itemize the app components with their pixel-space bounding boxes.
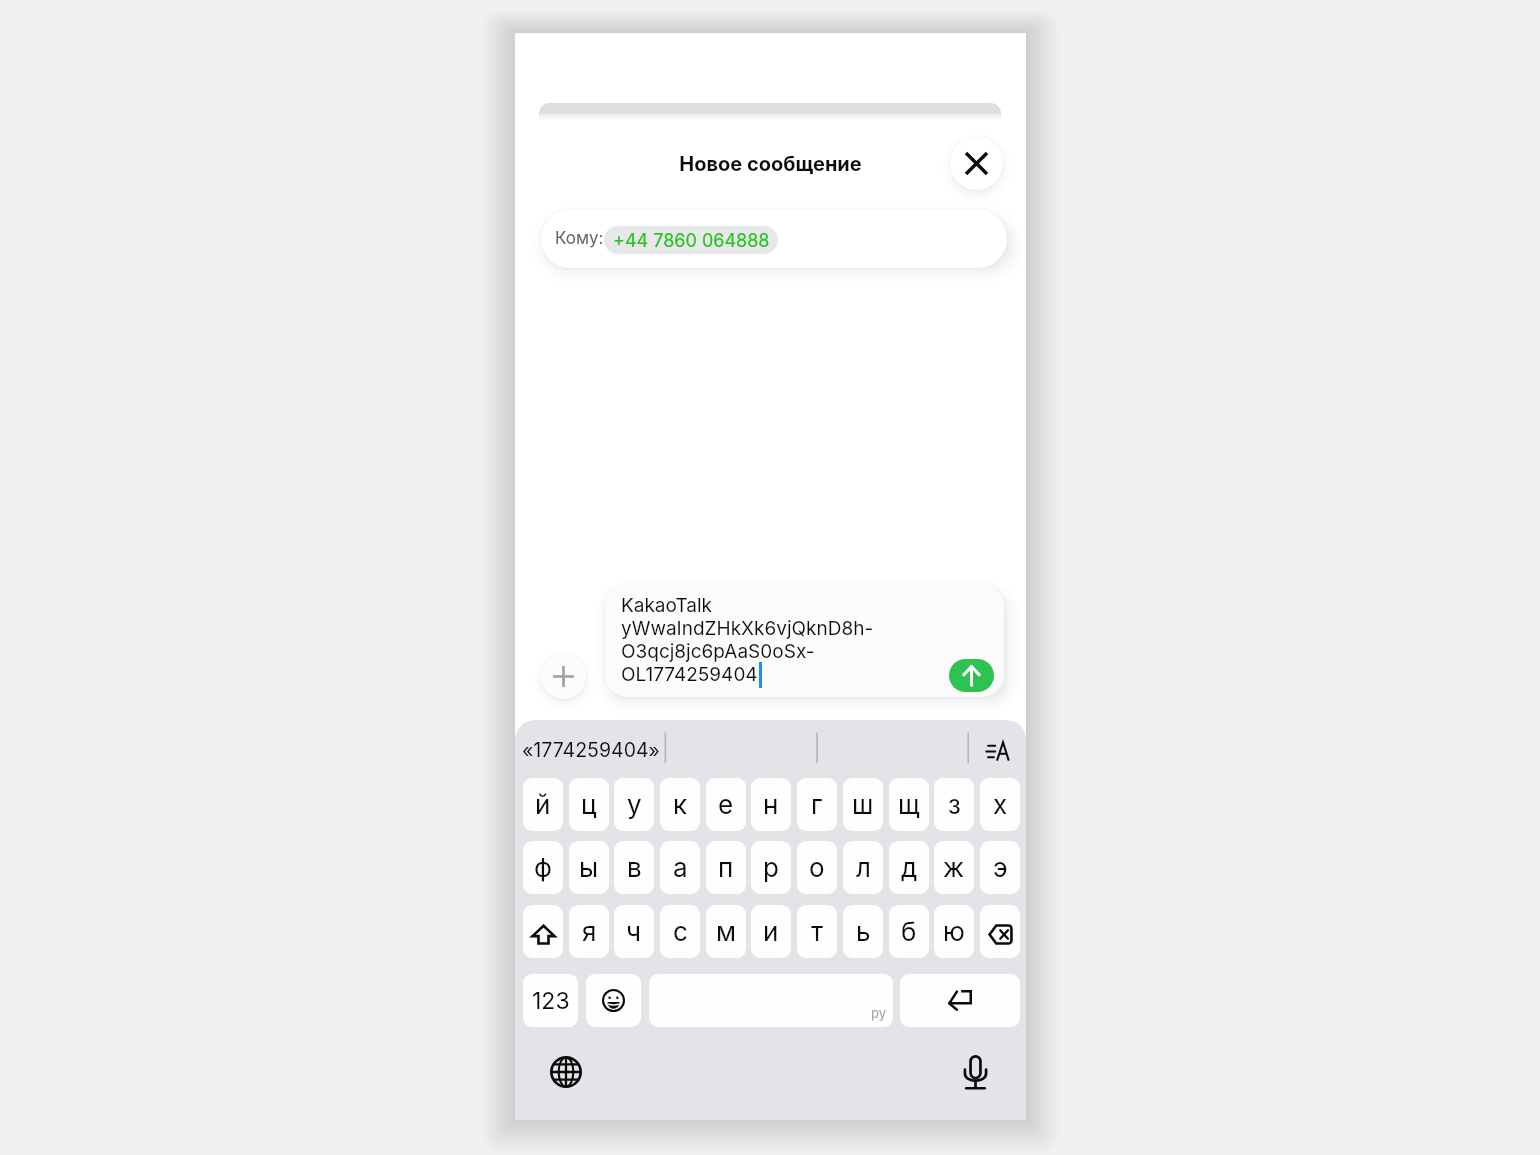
staticText: ру: [871, 1005, 887, 1021]
staticText: р: [763, 852, 779, 883]
staticText: 123: [532, 987, 570, 1015]
staticText: +44 7860 064888: [613, 230, 770, 252]
staticText: т: [811, 916, 824, 947]
button[interactable]: а: [660, 841, 700, 894]
button[interactable]: с: [660, 905, 700, 958]
button[interactable]: я: [569, 905, 609, 958]
staticText: щ: [898, 789, 920, 820]
staticText: ы: [579, 852, 599, 883]
button[interactable]: Emoji: [586, 974, 641, 1027]
staticText: с: [673, 916, 688, 947]
staticText: л: [856, 852, 871, 883]
staticText: э: [993, 852, 1008, 883]
button[interactable]: Message text field: [605, 585, 1004, 697]
button[interactable]: х: [980, 778, 1020, 831]
staticText: м: [716, 916, 737, 947]
staticText: ж: [943, 852, 965, 883]
button[interactable]: Space: [649, 974, 893, 1027]
staticText: и: [763, 916, 779, 947]
button[interactable]: в: [614, 841, 654, 894]
button[interactable]: з: [934, 778, 974, 831]
button[interactable]: ж: [934, 841, 974, 894]
button[interactable]: е: [706, 778, 746, 831]
staticText: «1774259404»: [522, 738, 660, 762]
button[interactable]: Add attachment: [541, 654, 586, 699]
staticText: д: [901, 852, 918, 883]
staticText: ц: [581, 789, 597, 820]
staticText: O3qcj8jc6pAaS0oSx-: [621, 640, 815, 663]
staticText: Новое сообщение: [515, 152, 1026, 176]
button[interactable]: у: [614, 778, 654, 831]
button[interactable]: ы: [569, 841, 609, 894]
button[interactable]: й: [523, 778, 563, 831]
button[interactable]: ш: [843, 778, 883, 831]
button[interactable]: Numbers: [523, 974, 578, 1027]
staticText: г: [811, 789, 823, 820]
button[interactable]: Dictate: [957, 1054, 993, 1090]
staticText: yWwaIndZHkXk6vjQknD8h-: [621, 617, 874, 640]
button[interactable]: Recipient field: [541, 210, 1007, 268]
button[interactable]: т: [797, 905, 837, 958]
staticText: а: [673, 852, 688, 883]
button[interactable]: ь: [843, 905, 883, 958]
staticText: OL1774259404: [621, 663, 758, 686]
button[interactable]: ч: [614, 905, 654, 958]
button[interactable]: Close: [950, 137, 1003, 190]
button[interactable]: Backspace: [980, 905, 1020, 958]
staticText: ф: [534, 852, 552, 883]
button[interactable]: Send: [949, 659, 994, 692]
staticText: н: [763, 789, 779, 820]
button[interactable]: Text formatting: [981, 735, 1013, 767]
button[interactable]: о: [797, 841, 837, 894]
button[interactable]: к: [660, 778, 700, 831]
button[interactable]: Return: [900, 974, 1020, 1027]
staticText: о: [809, 852, 825, 883]
button[interactable]: э: [980, 841, 1020, 894]
button[interactable]: м: [706, 905, 746, 958]
staticText: е: [718, 789, 734, 820]
staticText: ь: [856, 916, 871, 947]
button[interactable]: д: [889, 841, 929, 894]
button[interactable]: р: [751, 841, 791, 894]
staticText: ш: [852, 789, 874, 820]
staticText: к: [673, 789, 688, 820]
button[interactable]: ю: [934, 905, 974, 958]
staticText: ю: [943, 916, 965, 947]
button[interactable]: и: [751, 905, 791, 958]
staticText: з: [948, 789, 961, 820]
staticText: у: [627, 789, 642, 820]
button[interactable]: б: [889, 905, 929, 958]
button[interactable]: л: [843, 841, 883, 894]
button[interactable]: ц: [569, 778, 609, 831]
staticText: Кому:: [555, 228, 604, 249]
staticText: я: [582, 916, 597, 947]
staticText: ч: [626, 916, 642, 947]
staticText: KakaoTalk: [621, 594, 713, 617]
staticText: х: [993, 789, 1008, 820]
button[interactable]: г: [797, 778, 837, 831]
staticText: й: [535, 789, 551, 820]
button[interactable]: н: [751, 778, 791, 831]
button[interactable]: Shift: [523, 905, 563, 958]
staticText: п: [718, 852, 734, 883]
button[interactable]: п: [706, 841, 746, 894]
staticText: в: [627, 852, 642, 883]
button[interactable]: Switch keyboard language: [548, 1054, 584, 1090]
staticText: б: [901, 916, 917, 947]
button[interactable]: щ: [889, 778, 929, 831]
button[interactable]: ф: [523, 841, 563, 894]
